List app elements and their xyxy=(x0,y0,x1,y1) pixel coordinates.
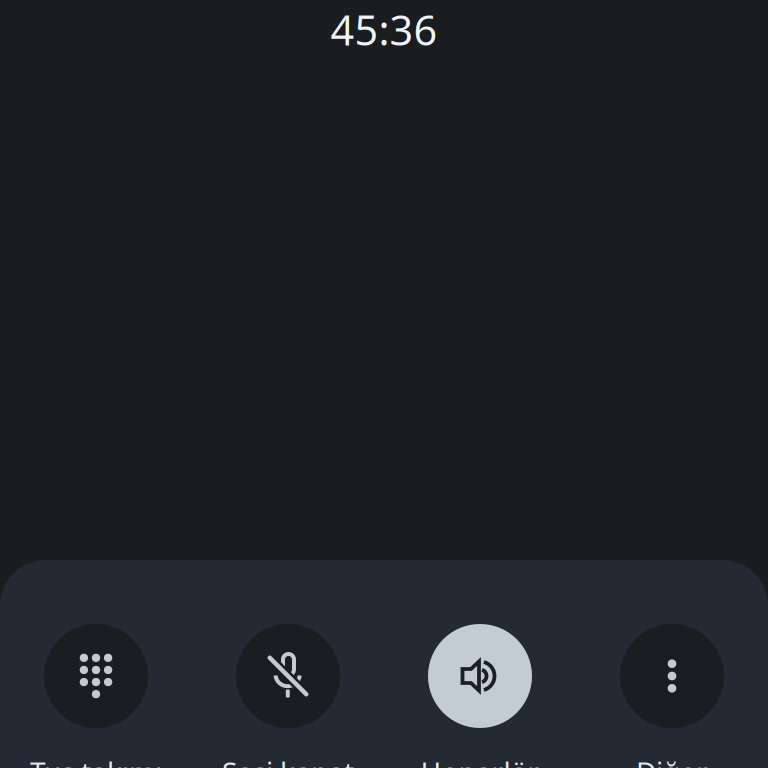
staticText: 45:36 xyxy=(330,2,437,57)
button[interactable]: Tuş takımı xyxy=(0,624,192,768)
button[interactable]: Hoparlör xyxy=(384,624,576,768)
staticText: Tuş takımı xyxy=(30,753,162,768)
staticText: Hoparlör xyxy=(420,753,539,768)
staticText: Sesi kapat xyxy=(222,753,354,768)
staticText: Diğer xyxy=(636,753,708,768)
button[interactable]: Sesi kapat xyxy=(192,624,384,768)
button[interactable]: Diğer xyxy=(576,624,768,768)
